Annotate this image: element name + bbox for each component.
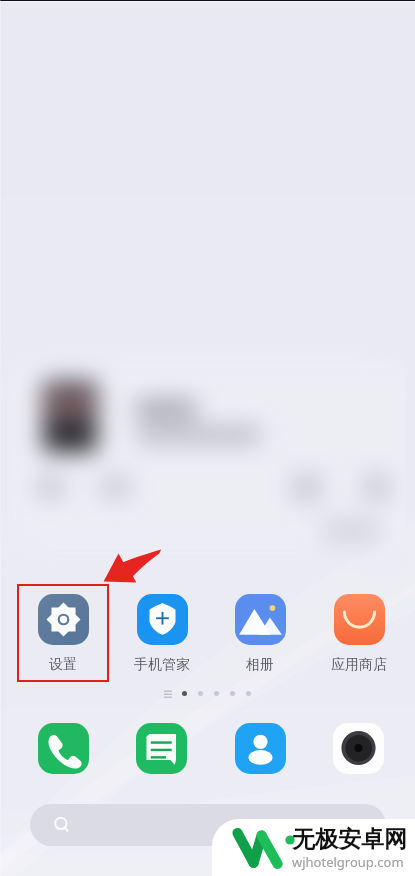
button[interactable]: 相册 (216, 590, 304, 674)
button[interactable]: Phone (38, 723, 89, 774)
button[interactable]: Page indicator (164, 688, 251, 698)
button[interactable]: Search (30, 804, 386, 846)
button[interactable]: Contacts (235, 723, 286, 774)
button[interactable]: 手机管家 (118, 590, 206, 674)
staticText: wjhotelgroup.com (292, 853, 404, 871)
staticText: 应用商店 (331, 656, 387, 674)
button[interactable]: 应用商店 (315, 590, 403, 674)
button[interactable]: 设置 (19, 590, 107, 674)
staticText: 设置 (49, 656, 77, 674)
staticText: 手机管家 (134, 656, 190, 674)
staticText: 相册 (246, 656, 274, 674)
staticText: 无极安卓网 (292, 825, 407, 854)
button[interactable]: Messages (136, 723, 187, 774)
button[interactable]: Camera (333, 723, 384, 774)
